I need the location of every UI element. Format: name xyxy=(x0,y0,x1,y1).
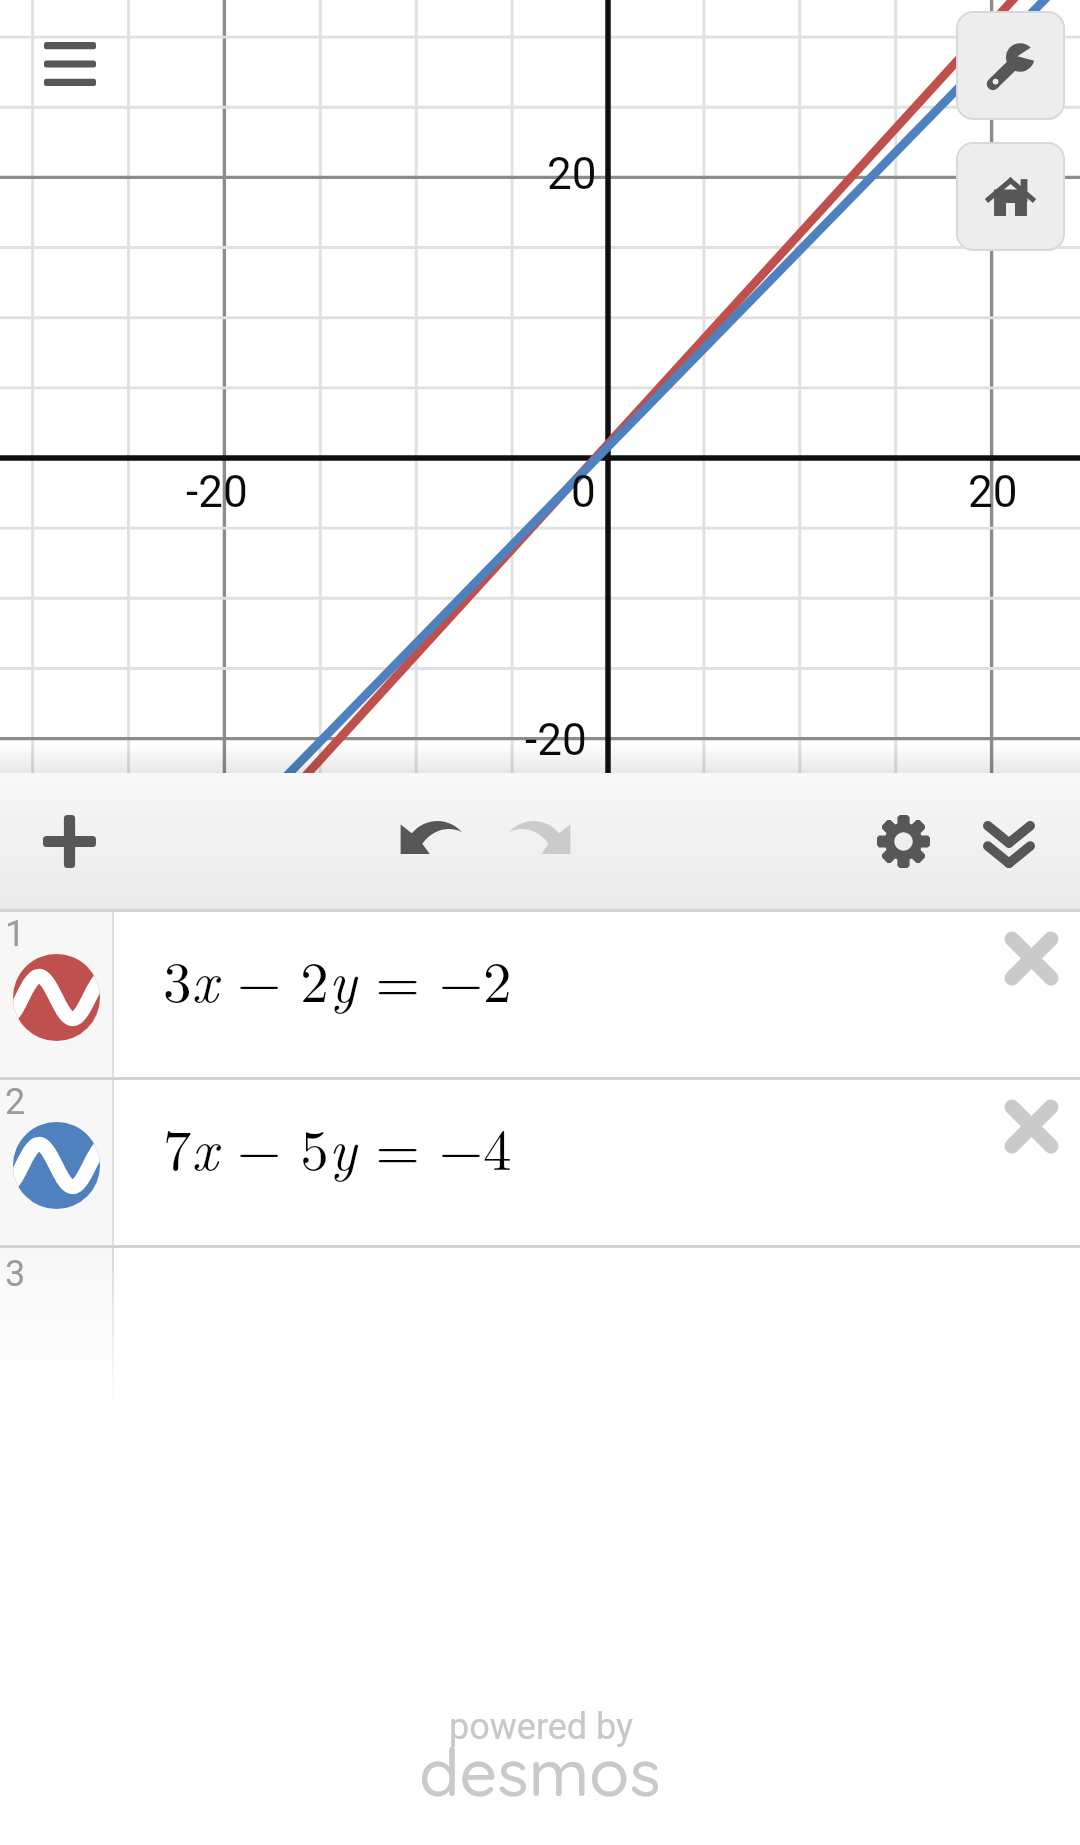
staticText: 3 xyxy=(5,1253,26,1295)
button[interactable]: Add expression xyxy=(19,791,119,891)
button[interactable]: Delete expression xyxy=(976,903,1080,1013)
button[interactable]: Delete expression xyxy=(976,1071,1080,1181)
staticText: 7x − 5y = −4 xyxy=(163,1106,512,1187)
button[interactable]: 2 xyxy=(0,1080,1080,1245)
staticText: 0 xyxy=(571,466,596,518)
staticText: -20 xyxy=(525,714,587,766)
button[interactable]: 1 xyxy=(0,912,1080,1077)
button[interactable]: Redo xyxy=(490,785,590,885)
button[interactable]: Graph settings xyxy=(956,11,1065,120)
staticText: 20 xyxy=(968,466,1018,518)
staticText: 2 xyxy=(5,1081,26,1123)
button[interactable]: Menu xyxy=(20,14,120,114)
staticText: 1 xyxy=(5,913,26,955)
staticText: 20 xyxy=(547,148,597,200)
button[interactable]: 3 xyxy=(0,1248,1080,1408)
staticText: desmos xyxy=(419,1730,661,1813)
button[interactable]: Collapse list xyxy=(959,794,1059,894)
button[interactable]: Settings xyxy=(853,791,953,891)
staticText: 3x − 2y = −2 xyxy=(163,938,512,1019)
staticText: powered by xyxy=(449,1706,634,1748)
button[interactable]: Home xyxy=(956,142,1065,251)
button[interactable]: Undo xyxy=(381,785,481,885)
staticText: -20 xyxy=(186,466,248,518)
